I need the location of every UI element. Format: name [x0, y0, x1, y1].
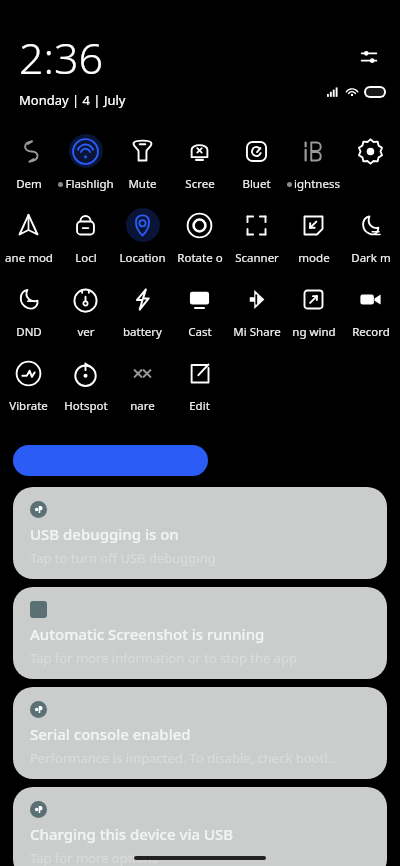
- button[interactable]: Brightness: [13, 445, 208, 476]
- button[interactable]: Bluet: [228, 131, 285, 192]
- button[interactable]: Mi Share: [228, 279, 285, 340]
- button[interactable]: ng wind: [285, 279, 342, 340]
- button[interactable]: Hotspot: [57, 353, 114, 414]
- button[interactable]: Record: [342, 279, 399, 340]
- staticText: Cast: [188, 324, 212, 340]
- button[interactable]: Scree: [171, 131, 228, 192]
- staticText: Dark m: [351, 250, 391, 266]
- staticText: Location: [119, 250, 166, 266]
- button[interactable]: Flashligh: [57, 131, 114, 192]
- staticText: Locl: [75, 250, 97, 266]
- staticText: Mi Share: [233, 324, 281, 340]
- button[interactable]: nare: [114, 353, 171, 414]
- staticText: Tap for more information or to stop the …: [30, 649, 298, 667]
- button[interactable]: Rotate o: [171, 205, 228, 266]
- staticText: Monday | 4 | July: [19, 91, 126, 109]
- staticText: Tap for more options: [30, 849, 158, 866]
- button[interactable]: Android System: [13, 487, 387, 579]
- button[interactable]: Dem: [0, 131, 57, 192]
- staticText: Scanner: [235, 250, 279, 266]
- staticText: ver: [77, 324, 95, 340]
- button[interactable]: DND: [0, 279, 57, 340]
- staticText: Automatic Screenshot is running: [30, 624, 265, 644]
- staticText: Dem: [16, 176, 42, 192]
- button[interactable]: Android System: [13, 787, 387, 866]
- staticText: Scree: [185, 176, 215, 192]
- staticText: mode: [298, 250, 330, 266]
- staticText: battery: [123, 324, 162, 340]
- staticText: DND: [16, 324, 42, 340]
- button[interactable]: Settings: [352, 40, 386, 74]
- staticText: Hotspot: [64, 398, 108, 414]
- staticText: Record: [352, 324, 390, 340]
- button[interactable]: ightness: [285, 131, 342, 192]
- button[interactable]: Edit: [171, 353, 228, 414]
- button[interactable]: mode: [285, 205, 342, 266]
- button[interactable]: ver: [57, 279, 114, 340]
- staticText: ightness: [294, 176, 340, 192]
- staticText: Mute: [128, 176, 157, 192]
- button[interactable]: Vibrate: [0, 353, 57, 414]
- staticText: nare: [130, 398, 155, 414]
- button[interactable]: Scanner: [228, 205, 285, 266]
- button[interactable]: [342, 131, 399, 192]
- staticText: Flashligh: [65, 176, 114, 192]
- staticText: Charging this device via USB: [30, 824, 234, 844]
- staticText: Serial console enabled: [30, 724, 191, 744]
- button[interactable]: Mute: [114, 131, 171, 192]
- button[interactable]: Locl: [57, 205, 114, 266]
- button[interactable]: Automatic Screenshot: [13, 587, 387, 679]
- staticText: Tap to turn off USB debugging: [30, 549, 216, 567]
- staticText: Edit: [189, 398, 210, 414]
- staticText: ane mod: [5, 250, 53, 266]
- staticText: 2:36: [19, 28, 104, 87]
- staticText: Performance is impacted. To disable, che…: [30, 749, 338, 767]
- staticText: USB debugging is on: [30, 524, 179, 544]
- button[interactable]: Location: [114, 205, 171, 266]
- button[interactable]: ane mod: [0, 205, 57, 266]
- button[interactable]: Dark m: [342, 205, 399, 266]
- button[interactable]: Cast: [171, 279, 228, 340]
- button[interactable]: Android System: [13, 687, 387, 779]
- staticText: Rotate o: [177, 250, 223, 266]
- staticText: Vibrate: [9, 398, 48, 414]
- button[interactable]: battery: [114, 279, 171, 340]
- staticText: Bluet: [242, 176, 271, 192]
- staticText: ng wind: [292, 324, 336, 340]
